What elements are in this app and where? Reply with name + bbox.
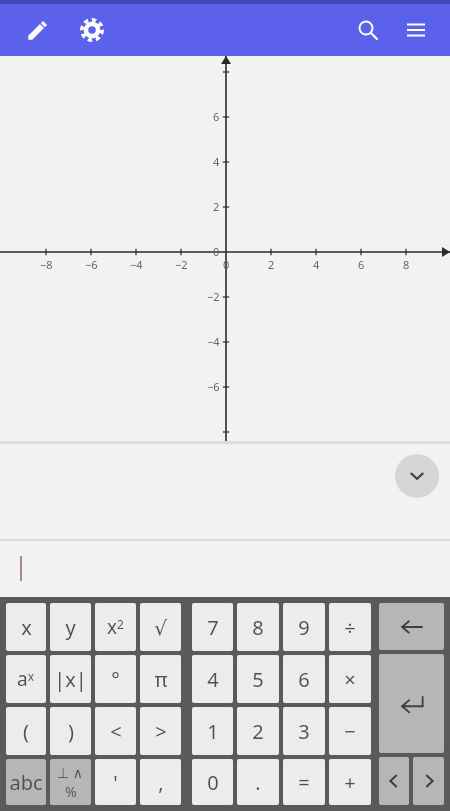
staticText: −6 <box>85 257 98 272</box>
button[interactable]: ÷ <box>329 603 371 651</box>
staticText: ax <box>17 666 35 692</box>
button[interactable]: x2 <box>95 603 136 651</box>
staticText: ) <box>68 718 74 745</box>
staticText: abc <box>9 769 43 796</box>
staticText: x <box>21 614 32 641</box>
button[interactable]: 1 <box>192 707 233 755</box>
button[interactable]: 5 <box>237 655 279 703</box>
button[interactable]: ax <box>6 655 46 703</box>
button[interactable]: − <box>329 707 371 755</box>
button[interactable]: 8 <box>237 603 279 651</box>
button[interactable]: 6 <box>283 655 325 703</box>
button[interactable]: 3 <box>283 707 325 755</box>
staticText: −6 <box>207 379 220 394</box>
button[interactable]: > <box>140 707 181 755</box>
staticText: ° <box>111 666 120 693</box>
button[interactable]: Enter <box>379 654 444 753</box>
button[interactable]: , <box>140 759 181 805</box>
staticText: 6 <box>213 109 220 124</box>
button[interactable]: Menu <box>392 6 440 54</box>
staticText: 1 <box>207 718 219 745</box>
staticText: 0 <box>223 257 230 272</box>
button[interactable]: π <box>140 655 181 703</box>
button[interactable]: abc <box>6 759 46 805</box>
staticText: 6 <box>358 257 365 272</box>
staticText: −2 <box>175 257 188 272</box>
staticText: . <box>255 769 261 796</box>
button[interactable]: . <box>237 759 279 805</box>
staticText: 2 <box>252 718 264 745</box>
button[interactable]: % <box>50 759 91 805</box>
staticText: 0 <box>213 244 220 259</box>
staticText: + <box>344 769 356 796</box>
staticText: − <box>344 718 356 745</box>
staticText: −4 <box>130 257 143 272</box>
staticText: ' <box>113 769 118 796</box>
staticText: = <box>298 769 310 796</box>
button[interactable]: y <box>50 603 91 651</box>
button[interactable]: Backspace <box>379 603 444 650</box>
staticText: 4 <box>207 666 219 693</box>
button[interactable]: Search <box>344 6 392 54</box>
staticText: |x| <box>54 666 87 693</box>
staticText: , <box>158 769 164 796</box>
button[interactable]: = <box>283 759 325 805</box>
staticText: 9 <box>298 614 310 641</box>
staticText: 6 <box>298 666 310 693</box>
staticText: √ <box>154 616 167 639</box>
button[interactable]: 7 <box>192 603 233 651</box>
staticText: 3 <box>298 718 310 745</box>
staticText: −2 <box>207 289 220 304</box>
staticText: ⊥ ∧ <box>57 763 84 782</box>
staticText: x2 <box>107 614 124 640</box>
staticText: 4 <box>213 154 220 169</box>
button[interactable]: ( <box>6 707 46 755</box>
staticText: 4 <box>313 257 320 272</box>
staticText: 2 <box>268 257 275 272</box>
staticText: y <box>65 614 76 641</box>
button[interactable]: ° <box>95 655 136 703</box>
button[interactable]: Settings <box>68 6 116 54</box>
staticText: % <box>65 782 77 801</box>
staticText: ÷ <box>344 614 356 641</box>
staticText: −4 <box>207 334 220 349</box>
button[interactable]: ' <box>95 759 136 805</box>
staticText: π <box>154 666 168 693</box>
button[interactable]: 0 <box>192 759 233 805</box>
staticText: 2 <box>213 199 220 214</box>
staticText: ( <box>23 718 29 745</box>
button[interactable] <box>0 541 450 597</box>
button[interactable]: 9 <box>283 603 325 651</box>
button[interactable]: + <box>329 759 371 805</box>
button[interactable]: 4 <box>192 655 233 703</box>
staticText: < <box>110 718 122 745</box>
button[interactable]: Edit <box>14 6 62 54</box>
button[interactable]: Move right <box>413 757 444 805</box>
staticText: > <box>155 718 167 745</box>
button[interactable]: × <box>329 655 371 703</box>
staticText: 8 <box>252 614 264 641</box>
button[interactable]: ) <box>50 707 91 755</box>
staticText: 7 <box>207 614 219 641</box>
staticText: 0 <box>207 769 219 796</box>
staticText: 8 <box>403 257 410 272</box>
button[interactable]: |x| <box>50 655 91 703</box>
button[interactable]: Collapse <box>395 454 439 498</box>
staticText: 5 <box>252 666 264 693</box>
button[interactable]: √ <box>140 603 181 651</box>
staticText: −8 <box>40 257 53 272</box>
staticText: × <box>344 666 356 693</box>
button[interactable]: Move left <box>379 757 409 805</box>
button[interactable]: < <box>95 707 136 755</box>
button[interactable]: 2 <box>237 707 279 755</box>
button[interactable]: x <box>6 603 46 651</box>
